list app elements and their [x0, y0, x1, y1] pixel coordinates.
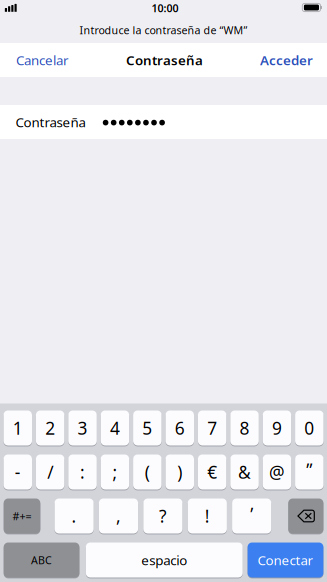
- staticText: -: [15, 460, 21, 483]
- staticText: &: [238, 460, 251, 483]
- staticText: 5: [142, 416, 152, 439]
- staticText: Conectar: [257, 551, 313, 569]
- staticText: .: [72, 504, 77, 527]
- button[interactable]: ’: [232, 498, 271, 534]
- button[interactable]: @: [263, 454, 291, 490]
- button[interactable]: 2: [36, 410, 64, 446]
- staticText: 0: [304, 416, 314, 439]
- staticText: (: [145, 460, 150, 483]
- staticText: €: [207, 460, 217, 483]
- button[interactable]: 0: [295, 410, 324, 446]
- button[interactable]: !: [188, 498, 227, 534]
- staticText: Cancelar: [16, 51, 69, 69]
- staticText: ,: [116, 504, 121, 527]
- button[interactable]: -: [3, 454, 32, 490]
- button[interactable]: ,: [99, 498, 138, 534]
- button[interactable]: espacio: [86, 542, 243, 578]
- staticText: 7: [207, 416, 217, 439]
- button[interactable]: 9: [263, 410, 291, 446]
- button[interactable]: ?: [143, 498, 182, 534]
- staticText: Contraseña: [15, 113, 85, 131]
- staticText: 1: [13, 416, 23, 439]
- staticText: ’: [250, 502, 253, 525]
- button[interactable]: ;: [101, 454, 129, 490]
- staticText: #+=: [12, 509, 31, 523]
- staticText: ?: [159, 504, 167, 527]
- staticText: :: [80, 460, 85, 483]
- button[interactable]: &: [230, 454, 259, 490]
- staticText: 3: [77, 416, 87, 439]
- staticText: /: [47, 460, 53, 483]
- button[interactable]: Conectar: [248, 542, 323, 578]
- button[interactable]: €: [198, 454, 226, 490]
- staticText: ABC: [31, 553, 52, 567]
- button[interactable]: 4: [101, 410, 129, 446]
- button[interactable]: .: [54, 498, 94, 534]
- staticText: !: [205, 504, 210, 527]
- staticText: @: [269, 460, 285, 483]
- button[interactable]: (: [133, 454, 162, 490]
- staticText: ”: [306, 458, 312, 481]
- button[interactable]: ”: [295, 454, 324, 490]
- button[interactable]: 6: [165, 410, 194, 446]
- staticText: Acceder: [260, 51, 313, 69]
- button[interactable]: Cancelar: [0, 43, 84, 77]
- staticText: Contraseña: [126, 51, 203, 69]
- button[interactable]: Acceder: [249, 43, 327, 77]
- button[interactable]: #+=: [4, 498, 40, 534]
- button[interactable]: ABC: [4, 542, 79, 578]
- staticText: ;: [112, 460, 117, 483]
- staticText: 9: [272, 416, 282, 439]
- staticText: 4: [110, 416, 120, 439]
- button[interactable]: [288, 498, 323, 534]
- staticText: espacio: [141, 551, 187, 569]
- staticText: 2: [45, 416, 55, 439]
- button[interactable]: 5: [133, 410, 162, 446]
- button[interactable]: :: [68, 454, 97, 490]
- staticText: 6: [175, 416, 185, 439]
- staticText: 8: [239, 416, 249, 439]
- button[interactable]: ): [165, 454, 194, 490]
- button[interactable]: /: [36, 454, 64, 490]
- staticText: ): [177, 460, 182, 483]
- staticText: Introduce la contraseña de “WM”: [79, 23, 247, 37]
- button[interactable]: 8: [230, 410, 259, 446]
- button[interactable]: 7: [198, 410, 226, 446]
- button[interactable]: 3: [68, 410, 97, 446]
- staticText: 10:00: [151, 1, 178, 15]
- button[interactable]: 1: [3, 410, 32, 446]
